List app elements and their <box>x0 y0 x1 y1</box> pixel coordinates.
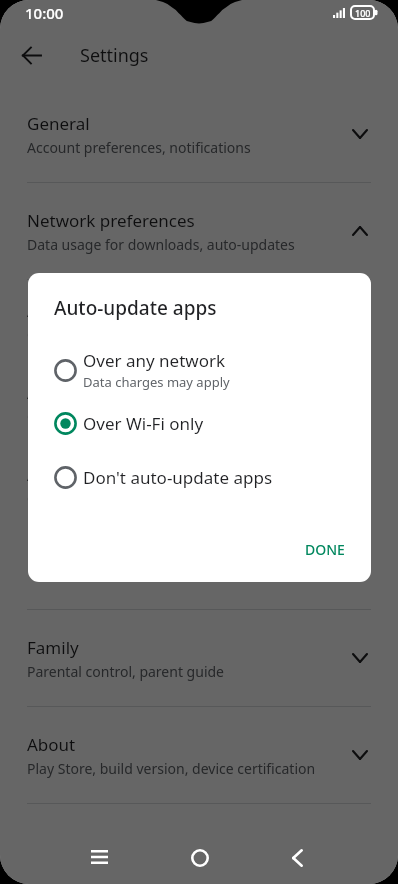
staticText: DONE <box>305 540 345 559</box>
staticText: General <box>27 112 90 135</box>
staticText: Data usage for downloads, auto-updates <box>27 235 295 254</box>
button[interactable]: Don't auto-update apps <box>28 451 371 503</box>
button[interactable]: Auto-play videos <box>0 444 398 526</box>
staticText: Over Wi-Fi only <box>27 489 126 508</box>
button[interactable]: App download preference <box>0 280 398 362</box>
staticText: 10:00 <box>25 3 64 23</box>
staticText: Over any network <box>27 325 144 344</box>
staticText: Parental control, parent guide <box>27 662 224 681</box>
staticText: About <box>27 733 76 756</box>
button[interactable]: Over Wi-Fi only <box>28 397 371 449</box>
staticText: Over Wi-Fi only <box>83 412 204 435</box>
button[interactable]: About <box>0 707 398 804</box>
button[interactable]: Family <box>0 610 398 707</box>
staticText: Over any network <box>83 349 226 372</box>
staticText: Auto-update apps <box>54 295 217 321</box>
staticText: Network preferences <box>27 209 195 232</box>
button[interactable]: DONE <box>293 530 357 569</box>
button[interactable]: Network preferences <box>0 183 398 280</box>
staticText: Play Store, build version, device certif… <box>27 759 316 778</box>
button[interactable]: Over any network <box>28 344 371 396</box>
staticText: Don't auto-update apps <box>83 466 273 489</box>
button[interactable]: Back <box>3 30 59 86</box>
button[interactable]: General <box>0 86 398 183</box>
button[interactable]: Auto-update apps <box>0 362 398 444</box>
staticText: Account preferences, notifications <box>27 138 251 157</box>
button[interactable]: Back <box>273 833 322 882</box>
staticText: Settings <box>80 43 149 68</box>
staticText: Over Wi-Fi only <box>27 407 126 426</box>
staticText: Auto-update apps <box>27 381 170 404</box>
button[interactable]: Recent apps <box>75 833 124 882</box>
staticText: Auto-play videos <box>27 463 160 486</box>
staticText: 100 <box>355 7 371 19</box>
button[interactable]: Home <box>175 833 224 882</box>
staticText: Data charges may apply <box>83 373 230 391</box>
staticText: Family <box>27 636 79 659</box>
staticText: App download preference <box>27 299 234 322</box>
